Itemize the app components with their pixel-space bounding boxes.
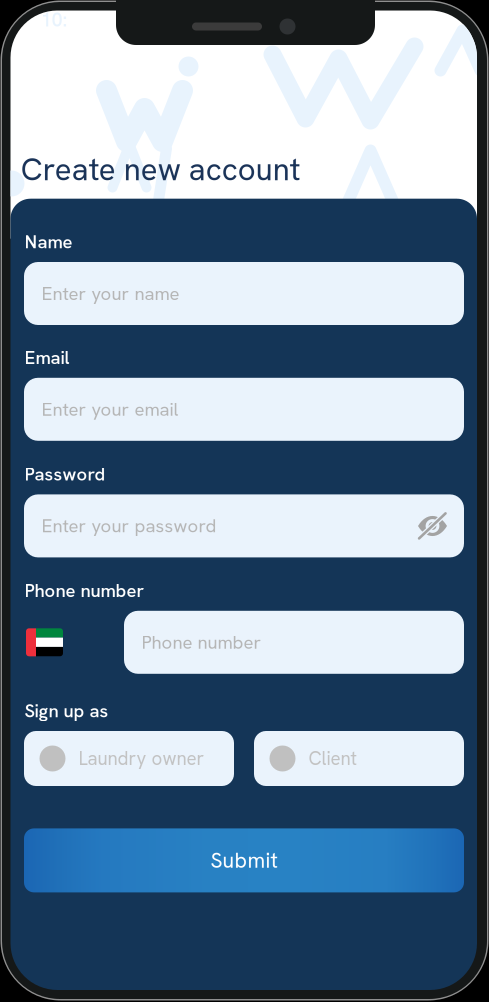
staticText: Sign up as — [24, 699, 108, 723]
staticText: Phone number — [24, 579, 144, 603]
button[interactable]: Client — [254, 731, 464, 786]
staticText: Enter your email — [41, 397, 178, 421]
staticText: Name — [24, 230, 72, 254]
button[interactable]: Enter your password — [24, 494, 464, 557]
staticText: Email — [24, 346, 69, 370]
button[interactable]: Laundry owner — [24, 731, 234, 786]
staticText: Password — [24, 462, 105, 486]
button[interactable]: Enter your name — [24, 262, 464, 325]
staticText: Submit — [210, 846, 277, 874]
button[interactable]: Phone number — [124, 611, 464, 674]
staticText: Enter your name — [41, 281, 179, 305]
button[interactable]: Enter your email — [24, 378, 464, 441]
staticText: Laundry owner — [78, 746, 204, 771]
staticText: Client — [308, 746, 356, 771]
staticText: Enter your password — [41, 514, 216, 538]
staticText: Create new account — [21, 149, 301, 190]
staticText: 10: — [40, 6, 67, 33]
staticText: Phone number — [141, 630, 261, 654]
button[interactable]: Submit — [24, 828, 464, 892]
